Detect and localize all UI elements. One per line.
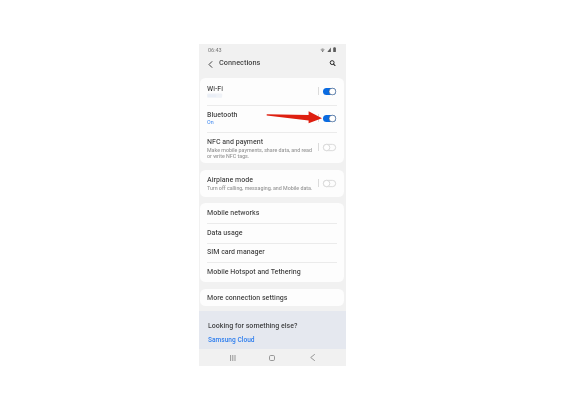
button[interactable]: [200, 262, 344, 282]
button[interactable]: [200, 223, 344, 243]
button[interactable]: [200, 243, 344, 263]
button[interactable]: [323, 180, 336, 187]
staticText: Mobile Hotspot and Tethering: [207, 267, 301, 275]
button[interactable]: Connections: [219, 58, 261, 67]
staticText: 06:43: [208, 47, 222, 53]
staticText: Looking for something else?: [208, 321, 298, 329]
button[interactable]: Home: [262, 349, 282, 366]
staticText: Make mobile payments, share data, and re…: [207, 147, 312, 159]
staticText: Mobile networks: [207, 208, 260, 216]
button[interactable]: Navigate up: [205, 59, 216, 70]
button[interactable]: Back: [302, 349, 322, 366]
button[interactable]: [200, 289, 344, 306]
staticText: Samsung Cloud: [208, 336, 255, 344]
staticText: Airplane mode: [207, 175, 253, 183]
button[interactable]: Recent apps: [222, 349, 242, 366]
button[interactable]: Search: [327, 58, 338, 69]
staticText: On: [207, 119, 214, 125]
staticText: Connections: [219, 58, 261, 67]
button[interactable]: [323, 88, 336, 95]
staticText: Data usage: [207, 228, 243, 236]
button[interactable]: [200, 132, 344, 163]
button[interactable]: [200, 170, 344, 197]
staticText: Bluetooth: [207, 110, 238, 118]
staticText: Turn off calling, messaging, and Mobile …: [207, 185, 313, 191]
button[interactable]: [323, 144, 336, 151]
staticText: NFC and payment: [207, 137, 264, 145]
button[interactable]: Samsung Cloud: [208, 336, 255, 344]
button[interactable]: [200, 105, 344, 132]
staticText: Wi-Fi: [207, 84, 223, 92]
button[interactable]: [200, 203, 344, 223]
button[interactable]: [200, 78, 344, 105]
button[interactable]: [323, 115, 336, 122]
staticText: More connection settings: [207, 293, 288, 301]
staticText: SIM card manager: [207, 247, 265, 255]
